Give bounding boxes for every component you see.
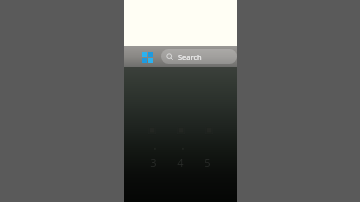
staticText: 5 — [204, 155, 211, 170]
staticText: • — [153, 142, 157, 154]
button[interactable]: Start — [140, 50, 154, 64]
staticText: • — [181, 142, 185, 154]
staticText: Search — [178, 52, 202, 62]
staticText: 4 — [177, 155, 184, 170]
staticText: 3 — [150, 155, 157, 170]
button[interactable]: Search — [161, 49, 237, 64]
